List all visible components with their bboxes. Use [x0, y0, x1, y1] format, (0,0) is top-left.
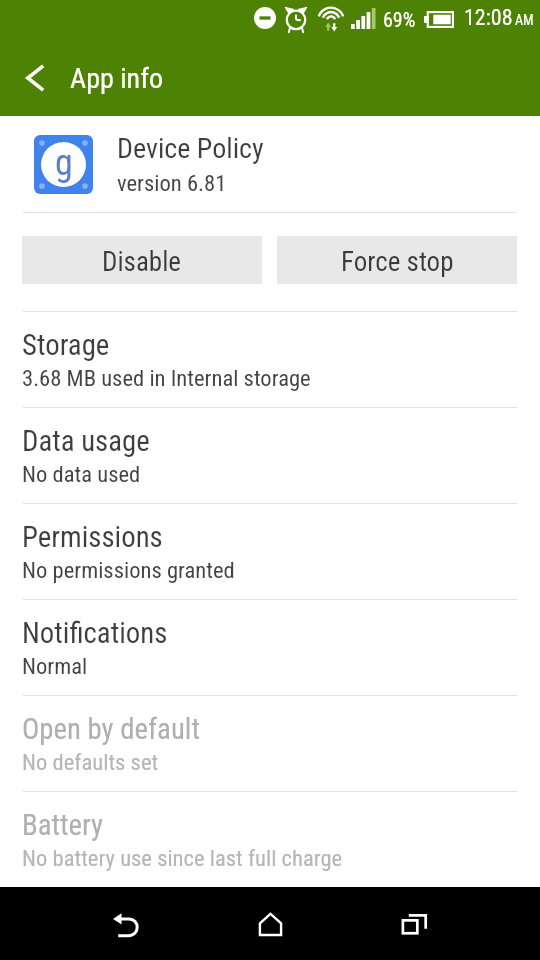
staticText: Notifications — [22, 616, 168, 650]
staticText: Open by default — [22, 712, 200, 746]
staticText: 12:08 — [464, 5, 513, 31]
staticText: AM — [515, 12, 534, 28]
button[interactable]: Back — [81, 887, 170, 960]
staticText: 69% — [383, 8, 416, 31]
other: Wi-Fi — [317, 4, 345, 31]
staticText: Storage — [22, 328, 110, 362]
staticText: No data used — [22, 461, 141, 487]
other: Battery 69 percent — [424, 11, 454, 28]
staticText: Force stop — [341, 246, 454, 278]
button[interactable]: Recent apps — [369, 887, 458, 960]
staticText: Battery — [22, 808, 104, 842]
staticText: No defaults set — [22, 749, 159, 775]
staticText: Disable — [102, 246, 182, 278]
staticText: No permissions granted — [22, 557, 235, 583]
button[interactable]: Open by default — [0, 696, 540, 791]
staticText: No battery use since last full charge — [22, 845, 343, 871]
staticText: Device Policy — [117, 132, 264, 165]
button[interactable]: Data usage — [0, 408, 540, 503]
button[interactable]: Disable — [22, 236, 262, 284]
staticText: Data usage — [22, 424, 150, 458]
staticText: version 6.81 — [117, 170, 227, 196]
staticText: g — [55, 142, 73, 184]
staticText: Normal — [22, 653, 88, 679]
staticText: Permissions — [22, 520, 163, 554]
other: Alarm set — [284, 4, 308, 31]
button[interactable]: Navigate up — [0, 40, 60, 116]
button[interactable]: Notifications — [0, 600, 540, 695]
button[interactable]: Battery — [0, 792, 540, 887]
button[interactable]: Permissions — [0, 504, 540, 599]
other: Do not disturb — [254, 7, 276, 29]
other: Mobile signal — [351, 8, 377, 29]
button[interactable]: Home — [226, 887, 314, 960]
staticText: App info — [70, 62, 164, 95]
button[interactable]: Storage — [0, 312, 540, 407]
staticText: 3.68 MB used in Internal storage — [22, 365, 311, 391]
button[interactable]: Force stop — [277, 236, 517, 284]
